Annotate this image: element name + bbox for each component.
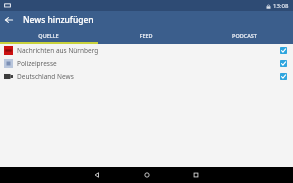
staticText: Nachrichten aus Nürnberg <box>17 46 278 55</box>
staticText: News hinzufügen <box>23 14 94 26</box>
button[interactable]: PODCAST <box>195 29 293 42</box>
staticText: PODCAST <box>232 32 257 39</box>
button[interactable]: Nachrichten aus Nürnberg <box>0 44 293 57</box>
button[interactable]: Back <box>0 11 18 29</box>
button[interactable]: Toggle Polizeipresse <box>278 58 289 69</box>
button[interactable]: Toggle Nachrichten aus Nürnberg <box>278 45 289 56</box>
button[interactable]: Back <box>90 168 104 182</box>
staticText: Polizeipresse <box>17 59 278 68</box>
button[interactable]: Deutschland News <box>0 70 293 83</box>
button[interactable]: Polizeipresse <box>0 57 293 70</box>
staticText: FEED <box>139 32 153 39</box>
staticText: 13:08 <box>273 2 289 10</box>
button[interactable]: Home <box>140 168 154 182</box>
staticText: Deutschland News <box>17 72 278 81</box>
button[interactable]: Toggle Deutschland News <box>278 71 289 82</box>
button[interactable]: QUELLE <box>0 29 97 42</box>
button[interactable]: FEED <box>97 29 195 42</box>
button[interactable]: Recents <box>189 168 203 182</box>
staticText: QUELLE <box>38 32 59 39</box>
